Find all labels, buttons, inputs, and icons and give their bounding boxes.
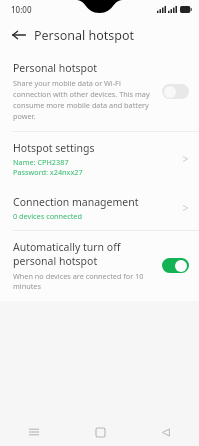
- button[interactable]: Home: [67, 418, 133, 446]
- button[interactable]: Automatically turn off personal hotspot: [0, 231, 199, 301]
- button[interactable]: Recent apps: [0, 418, 67, 446]
- button[interactable]: Hotspot settings: [0, 132, 199, 186]
- button[interactable]: Connection management: [0, 186, 199, 230]
- staticText: Personal hotspot: [34, 27, 135, 44]
- staticText: Connection management: [13, 195, 139, 209]
- button[interactable]: Personal hotspot: [0, 52, 199, 131]
- button[interactable]: Switch off: [162, 84, 189, 99]
- staticText: Automatically turn off personal hotspot: [13, 240, 153, 268]
- staticText: Personal hotspot: [13, 61, 98, 75]
- staticText: Hotspot settings: [13, 141, 95, 155]
- staticText: Share your mobile data or Wi-Fi connecti…: [13, 78, 153, 121]
- staticText: 10:00: [11, 4, 32, 15]
- button[interactable]: Back: [7, 23, 31, 47]
- staticText: Name: CPH2387: [13, 157, 69, 167]
- button[interactable]: Back: [133, 418, 199, 446]
- staticText: When no devices are connected for 10 min…: [13, 271, 153, 291]
- button[interactable]: Switch on: [162, 258, 189, 273]
- staticText: Password: x24nxx27: [13, 167, 83, 177]
- staticText: 0 devices connected: [13, 211, 82, 221]
